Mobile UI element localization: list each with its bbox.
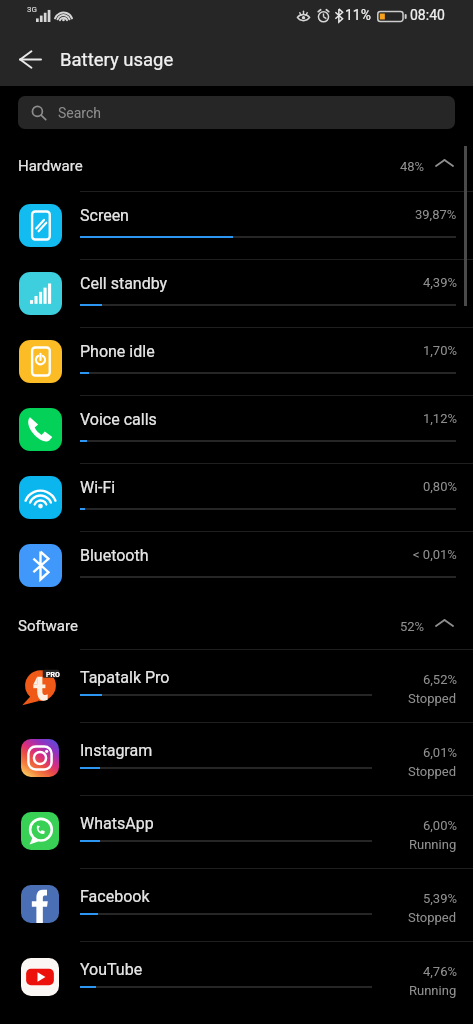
staticText: Facebook xyxy=(80,887,150,906)
staticText: Running xyxy=(409,837,457,852)
staticText: Instagram xyxy=(80,741,153,760)
staticText: Phone idle xyxy=(80,342,155,361)
staticText: 5,39% xyxy=(423,891,457,906)
button[interactable]: Collapse section xyxy=(430,612,458,634)
staticText: Voice calls xyxy=(80,410,157,429)
staticText: 1,12% xyxy=(423,411,457,426)
button[interactable]: Cell standby xyxy=(0,259,473,327)
staticText: Battery usage xyxy=(60,49,174,71)
button[interactable]: PRO xyxy=(0,649,473,722)
staticText: Wi-Fi xyxy=(80,478,116,497)
staticText: Hardware xyxy=(18,157,83,175)
button[interactable]: Facebook xyxy=(0,868,473,941)
staticText: Screen xyxy=(80,206,129,225)
staticText: Cell standby xyxy=(80,274,168,293)
button[interactable]: Bluetooth xyxy=(0,531,473,599)
staticText: 6,01% xyxy=(423,745,457,760)
staticText: Tapatalk Pro xyxy=(80,668,170,687)
button[interactable]: WhatsApp xyxy=(0,795,473,868)
staticText: Stopped xyxy=(408,764,457,779)
staticText: 0,80% xyxy=(423,479,457,494)
staticText: PRO xyxy=(46,671,60,679)
staticText: 52% xyxy=(400,619,425,634)
staticText: Search xyxy=(58,105,102,121)
staticText: YouTube xyxy=(80,960,143,979)
staticText: 3G xyxy=(27,5,37,14)
button[interactable]: Instagram xyxy=(0,722,473,795)
button[interactable]: Screen xyxy=(0,191,473,259)
staticText: 6,00% xyxy=(423,818,457,833)
staticText: Stopped xyxy=(408,691,457,706)
button[interactable]: YouTube xyxy=(0,941,473,1014)
button[interactable]: Wi-Fi xyxy=(0,463,473,531)
staticText: 4,39% xyxy=(423,275,457,290)
staticText: 39,87% xyxy=(415,207,457,222)
staticText: 08:40 xyxy=(410,7,445,23)
staticText: < 0,01% xyxy=(413,547,457,562)
button[interactable]: Collapse section xyxy=(430,152,458,174)
staticText: Stopped xyxy=(408,910,457,925)
staticText: 6,52% xyxy=(423,672,457,687)
button[interactable]: Back xyxy=(8,37,52,81)
staticText: Software xyxy=(18,617,78,635)
button[interactable]: Search xyxy=(18,96,455,129)
button[interactable]: Hardware xyxy=(0,131,473,191)
staticText: 11% xyxy=(345,7,371,23)
staticText: 4,76% xyxy=(423,964,457,979)
staticText: Bluetooth xyxy=(80,546,149,565)
staticText: 1,70% xyxy=(423,343,457,358)
staticText: Running xyxy=(409,983,457,998)
button[interactable]: Software xyxy=(0,599,473,649)
staticText: WhatsApp xyxy=(80,814,154,833)
staticText: 48% xyxy=(400,159,425,174)
button[interactable]: Phone idle xyxy=(0,327,473,395)
button[interactable]: Voice calls xyxy=(0,395,473,463)
